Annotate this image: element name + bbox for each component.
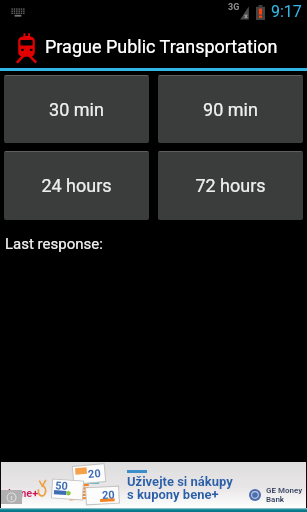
staticText: 3G xyxy=(228,2,240,13)
button[interactable]: Prague Public Transportation xyxy=(0,24,307,68)
staticText: 20 xyxy=(87,467,102,481)
button[interactable]: 72 hours xyxy=(158,151,303,220)
other: Ad info xyxy=(1,490,22,504)
button[interactable]: 24 hours xyxy=(4,151,149,220)
staticText: Bank xyxy=(266,495,285,504)
button[interactable]: 90 min xyxy=(158,75,303,143)
staticText: 9:17 xyxy=(271,2,302,21)
staticText: s kupony bene+ xyxy=(127,487,219,502)
button[interactable]: 30 min xyxy=(4,75,149,143)
staticText: 72 hours xyxy=(195,175,266,196)
staticText: 30 min xyxy=(49,99,104,120)
staticText: GE Money xyxy=(266,486,303,495)
staticText: 90 min xyxy=(203,99,258,120)
staticText: Prague Public Transportation xyxy=(45,36,278,57)
staticText: Last response: xyxy=(5,235,103,253)
staticText: 20 xyxy=(102,488,115,502)
staticText: 24 hours xyxy=(41,175,112,196)
staticText: bene+ xyxy=(8,487,39,500)
staticText: Uživejte si nákupy xyxy=(127,474,233,489)
button[interactable]: Advertisement xyxy=(1,462,306,508)
staticText: 50 xyxy=(55,479,69,493)
